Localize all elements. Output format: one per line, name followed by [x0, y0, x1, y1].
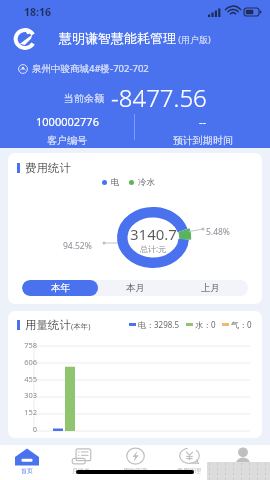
button[interactable]: 上月 [173, 280, 248, 296]
other: 费用管理 [179, 447, 200, 466]
staticText: 18:16 [24, 5, 51, 19]
staticText: 泉州中骏商城4#楼-702-702 [32, 62, 149, 75]
button[interactable]: 月账单 [54, 445, 108, 480]
staticText: 5.48% [206, 226, 230, 238]
staticText: 费用统计 [25, 161, 71, 175]
staticText: 电：3298.5 [138, 319, 180, 330]
staticText: 606 [8, 357, 37, 367]
staticText: 首页 [21, 467, 33, 475]
staticText: 我的 [237, 467, 249, 475]
staticText: 总计:元 [140, 243, 167, 254]
button[interactable]: 我的 [216, 445, 270, 480]
staticText: (本年) [71, 321, 91, 331]
staticText: 1000002776 [36, 114, 99, 129]
other: 用能管理 [126, 447, 145, 466]
button[interactable]: 本月 [98, 280, 173, 296]
staticText: 94.52% [63, 240, 92, 252]
staticText: 预计到期时间 [173, 134, 233, 147]
button[interactable]: 首页 [0, 445, 54, 480]
staticText: 客户编号 [47, 134, 87, 147]
staticText: 152 [8, 407, 37, 417]
staticText: 冷水 [138, 177, 155, 188]
staticText: 本月 [126, 282, 145, 294]
staticText: 用能管理 [123, 467, 147, 475]
other: 首页 [15, 447, 39, 466]
button[interactable]: 本年 [22, 280, 98, 296]
staticText: (用户版) [176, 33, 211, 45]
staticText: 303 [8, 390, 37, 400]
staticText: -8477.56 [111, 81, 207, 114]
staticText: 3140.7 [130, 224, 177, 244]
staticText: -- [199, 114, 207, 129]
button[interactable]: 费用管理 [162, 445, 216, 480]
staticText: 455 [8, 374, 37, 384]
other: 我的 [233, 447, 253, 466]
staticText: 758 [8, 340, 37, 350]
staticText: 用量统计 [25, 318, 71, 332]
button[interactable]: 用能管理 [108, 445, 162, 480]
staticText: 电 [111, 177, 120, 188]
staticText: 月账单 [72, 467, 90, 475]
staticText: 0 [8, 424, 37, 434]
other: 月账单 [71, 447, 92, 466]
staticText: 上月 [201, 282, 220, 294]
staticText: 水：0 [195, 319, 216, 330]
staticText: 气：0 [231, 319, 252, 330]
staticText: 费用管理 [177, 467, 201, 475]
staticText: 当前余额 [64, 92, 104, 105]
staticText: 本年 [51, 282, 70, 294]
staticText: 慧明谦智慧能耗管理 [59, 30, 176, 46]
